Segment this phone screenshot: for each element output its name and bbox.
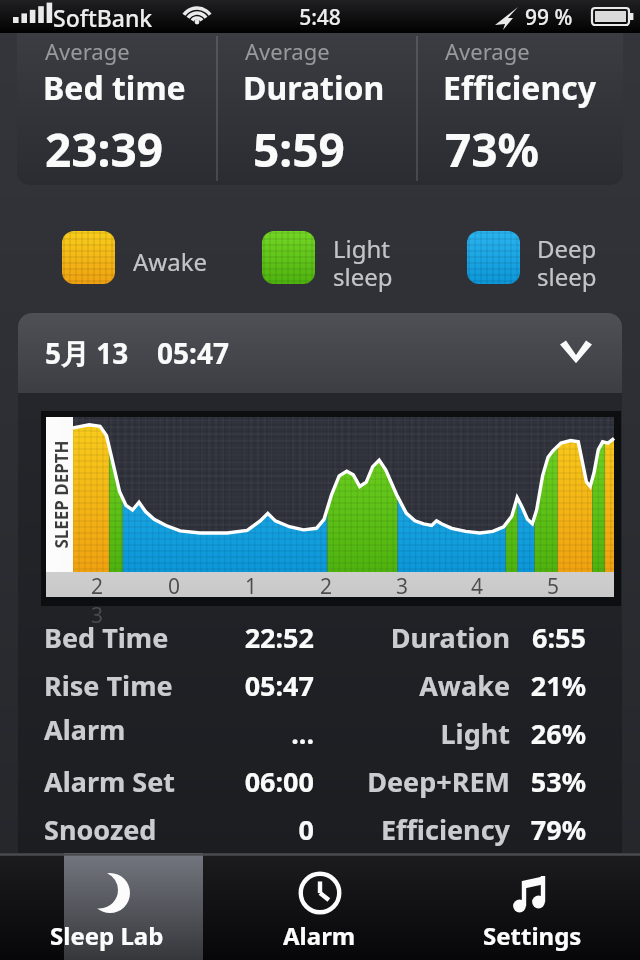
staticText: Bed time — [43, 66, 186, 110]
staticText: 5 — [541, 572, 565, 601]
staticText: Duration — [243, 66, 385, 110]
staticText: Efficiency — [314, 811, 510, 848]
staticText: 21% — [524, 667, 586, 704]
staticText: Deep+REM — [314, 763, 510, 800]
staticText: Average — [45, 36, 130, 66]
staticText: 22:52 — [184, 619, 314, 656]
button[interactable] — [467, 231, 520, 284]
button[interactable]: Alarm Ring — [18, 711, 622, 755]
button[interactable]: Settings — [426, 853, 639, 960]
staticText: 0 — [184, 811, 314, 848]
staticText: 0 — [162, 572, 186, 601]
staticText: 1 — [239, 572, 263, 601]
staticText: 6:55 — [524, 619, 586, 656]
staticText: Awake — [314, 667, 510, 704]
staticText: Duration — [314, 619, 510, 656]
staticText: Light — [314, 715, 510, 752]
button[interactable]: Alarm Set — [18, 759, 622, 803]
staticText: SLEEP DEPTH — [49, 424, 72, 564]
staticText: Average — [445, 36, 530, 66]
staticText: Alarm Set — [44, 763, 184, 800]
staticText: 26% — [524, 715, 586, 752]
staticText: Bed Time — [44, 619, 184, 656]
staticText: Snoozed — [44, 811, 184, 848]
staticText: 53% — [524, 763, 586, 800]
staticText: Settings — [483, 919, 582, 952]
staticText: 99 % — [525, 3, 573, 32]
staticText: Deep sleep — [537, 232, 597, 293]
staticText: Alarm Ring — [44, 711, 184, 755]
button[interactable]: Alarm — [213, 853, 426, 960]
staticText: ... — [184, 715, 314, 752]
staticText: 5:59 — [253, 118, 345, 181]
staticText: 23 — [85, 572, 109, 630]
staticText: Awake — [133, 245, 208, 278]
staticText: 79% — [524, 811, 586, 848]
button[interactable]: Rise Time — [18, 663, 622, 707]
staticText: 5月 13 — [45, 334, 129, 372]
staticText: Efficiency — [443, 66, 596, 110]
staticText: 5:48 — [0, 3, 640, 32]
staticText: SoftBank — [53, 2, 153, 33]
staticText: Light sleep — [333, 232, 393, 293]
button[interactable] — [62, 231, 115, 284]
staticText: 3 — [390, 572, 414, 601]
staticText: Average — [245, 36, 330, 66]
button[interactable]: Snoozed — [18, 807, 622, 851]
staticText: 23:39 — [45, 118, 164, 181]
staticText: 73% — [445, 118, 540, 181]
staticText: 05:47 — [184, 667, 314, 704]
staticText: 2 — [314, 572, 338, 601]
button[interactable]: Bed Time — [18, 615, 622, 659]
button[interactable]: 5月 13 — [18, 313, 622, 393]
staticText: 05:47 — [157, 334, 229, 372]
button[interactable]: Average — [17, 22, 623, 185]
staticText: Rise Time — [44, 667, 184, 704]
button[interactable] — [262, 231, 315, 284]
staticText: 4 — [465, 572, 489, 601]
staticText: 06:00 — [184, 763, 314, 800]
button[interactable]: Sleep Lab — [0, 853, 213, 960]
staticText: Sleep Lab — [50, 919, 164, 952]
button[interactable]: Collapse — [552, 329, 600, 377]
staticText: Alarm — [283, 919, 356, 952]
